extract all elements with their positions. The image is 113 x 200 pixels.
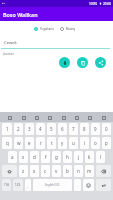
button[interactable]: c xyxy=(41,165,50,177)
staticText: English (US) xyxy=(45,183,60,187)
button[interactable]: Toolbar action xyxy=(20,114,27,121)
staticText: 7 xyxy=(72,126,75,132)
staticText: 1 xyxy=(6,126,9,132)
staticText: b xyxy=(66,168,69,174)
button[interactable]: r xyxy=(36,137,45,149)
staticText: 3 xyxy=(28,126,31,132)
button[interactable]: l xyxy=(96,151,105,163)
staticText: Malang xyxy=(66,27,76,31)
button[interactable]: ?1# xyxy=(2,179,11,191)
button[interactable]: y xyxy=(58,137,67,149)
button[interactable]: f xyxy=(41,151,50,163)
staticText: 100% xyxy=(89,2,98,6)
button[interactable]: j xyxy=(74,151,83,163)
staticText: Cewek xyxy=(4,40,17,46)
staticText: d xyxy=(33,154,36,160)
staticText: s xyxy=(22,154,25,160)
button[interactable]: Toolbar action xyxy=(60,114,67,121)
button[interactable]: Emoji xyxy=(83,179,94,191)
button[interactable]: o xyxy=(91,137,100,149)
staticText: c xyxy=(44,168,47,174)
button[interactable]: 2 xyxy=(14,123,23,135)
button[interactable]: 0 xyxy=(102,123,111,135)
button[interactable]: Share xyxy=(95,57,106,68)
staticText: v xyxy=(55,168,58,174)
staticText: 9 xyxy=(94,126,97,132)
button[interactable]: Toolbar action xyxy=(73,114,80,121)
button[interactable]: 5 xyxy=(47,123,56,135)
staticText: i xyxy=(84,140,86,146)
button[interactable]: h xyxy=(63,151,72,163)
button[interactable]: Yogyakarta xyxy=(34,27,54,31)
staticText: g xyxy=(55,154,58,160)
staticText: 123 xyxy=(15,183,21,187)
staticText: 2 xyxy=(17,126,20,132)
button[interactable]: x xyxy=(30,165,39,177)
button[interactable]: w xyxy=(14,137,23,149)
button[interactable]: p xyxy=(102,137,111,149)
button[interactable]: e xyxy=(25,137,34,149)
button[interactable]: q xyxy=(2,137,12,149)
staticText: e xyxy=(28,140,31,146)
button[interactable]: t xyxy=(47,137,56,149)
staticText: o xyxy=(94,140,97,146)
button[interactable]: m xyxy=(85,165,94,177)
staticText: Jawaban xyxy=(3,52,15,56)
button[interactable]: . xyxy=(74,179,81,191)
staticText: Boso Walikan xyxy=(3,11,38,18)
staticText: 6 xyxy=(61,126,64,132)
button[interactable]: Copy xyxy=(77,57,88,68)
staticText: r xyxy=(40,140,42,146)
staticText: a xyxy=(11,154,14,160)
staticText: . xyxy=(77,183,79,188)
button[interactable]: 1 xyxy=(2,123,12,135)
button[interactable]: 123 xyxy=(13,179,23,191)
button[interactable]: Malang xyxy=(60,27,76,31)
button[interactable]: 6 xyxy=(58,123,67,135)
button[interactable]: b xyxy=(63,165,72,177)
button[interactable]: Shift xyxy=(2,165,17,177)
button[interactable]: k xyxy=(85,151,94,163)
staticText: y xyxy=(61,140,64,146)
button[interactable]: a xyxy=(8,151,17,163)
button[interactable]: Toolbar action xyxy=(33,114,40,121)
staticText: l xyxy=(100,154,102,160)
button[interactable]: 9 xyxy=(91,123,100,135)
button[interactable]: u xyxy=(69,137,78,149)
button[interactable]: Toolbar action xyxy=(86,114,93,121)
staticText: ?1# xyxy=(4,183,9,187)
button[interactable]: i xyxy=(80,137,89,149)
button[interactable]: Listen xyxy=(59,57,70,68)
staticText: j xyxy=(78,154,80,160)
button[interactable]: s xyxy=(19,151,28,163)
button[interactable]: 3 xyxy=(25,123,34,135)
button[interactable]: g xyxy=(52,151,61,163)
button[interactable]: z xyxy=(19,165,28,177)
button[interactable]: Toolbar action xyxy=(6,114,13,121)
staticText: k xyxy=(88,154,91,160)
staticText: t xyxy=(51,140,53,146)
staticText: z xyxy=(22,168,25,174)
staticText: x xyxy=(33,168,36,174)
button[interactable]: 4 xyxy=(36,123,45,135)
staticText: h xyxy=(66,154,69,160)
button[interactable]: Toolbar action xyxy=(46,114,53,121)
button[interactable]: Backspace xyxy=(96,165,111,177)
button[interactable]: , xyxy=(25,179,31,191)
staticText: 20:55 xyxy=(103,2,112,6)
button[interactable]: Enter xyxy=(96,179,111,191)
button[interactable]: Toolbar action xyxy=(100,114,107,121)
button[interactable]: English (US) xyxy=(33,179,72,191)
staticText: q xyxy=(6,140,9,146)
staticText: , xyxy=(27,183,29,188)
staticText: 0 xyxy=(105,126,108,132)
staticText: p xyxy=(105,140,108,146)
button[interactable]: n xyxy=(74,165,83,177)
staticText: u xyxy=(72,140,75,146)
staticText: 4 xyxy=(39,126,42,132)
button[interactable]: 7 xyxy=(69,123,78,135)
staticText: 8 xyxy=(83,126,86,132)
button[interactable]: d xyxy=(30,151,39,163)
button[interactable]: 8 xyxy=(80,123,89,135)
button[interactable]: v xyxy=(52,165,61,177)
